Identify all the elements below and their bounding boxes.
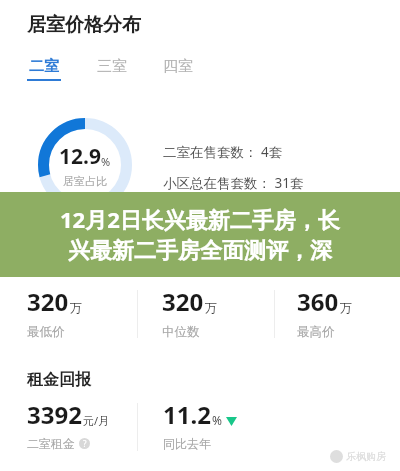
staticText: 元/月 <box>83 413 110 428</box>
button[interactable]: 四室 <box>163 57 193 76</box>
staticText: 万 <box>205 300 217 315</box>
staticText: 11.2 <box>163 398 211 431</box>
staticText: 万 <box>340 300 352 315</box>
staticText: 最高价 <box>297 324 335 340</box>
staticText: 同比去年 <box>163 436 211 451</box>
staticText: 小区总在售套数： 31套 <box>163 174 304 192</box>
staticText: 12月2日长兴最新二手房，长 <box>60 204 340 234</box>
staticText: 二室在售套数： 4套 <box>163 143 283 161</box>
staticText: 总价分布 <box>27 253 87 272</box>
staticText: 最低价 <box>27 324 65 340</box>
button[interactable]: 三室 <box>97 57 127 76</box>
button[interactable]: 二室 <box>27 57 61 81</box>
staticText: 320 <box>162 285 204 318</box>
staticText: 万 <box>70 300 82 315</box>
staticText: 360 <box>297 285 339 318</box>
staticText: 三室 <box>97 57 127 76</box>
staticText: % <box>212 412 222 428</box>
staticText: 居室价格分布 <box>27 13 141 37</box>
staticText: 320 <box>27 285 69 318</box>
staticText: 中位数 <box>162 324 200 340</box>
staticText: 二室租金 <box>27 436 75 451</box>
staticText: 乐枫购房 <box>346 450 386 463</box>
staticText: 兴最新二手房全面测评，深 <box>68 237 332 265</box>
staticText: 3392 <box>27 398 82 431</box>
staticText: 12.9 <box>59 142 101 171</box>
staticText: 租金回报 <box>27 370 91 390</box>
staticText: 二室 <box>29 57 59 76</box>
button[interactable]: 租金说明 <box>79 438 90 449</box>
staticText: 居室占比 <box>63 174 107 188</box>
staticText: ? <box>83 438 87 449</box>
staticText: 四室 <box>163 57 193 76</box>
staticText: % <box>101 154 111 169</box>
